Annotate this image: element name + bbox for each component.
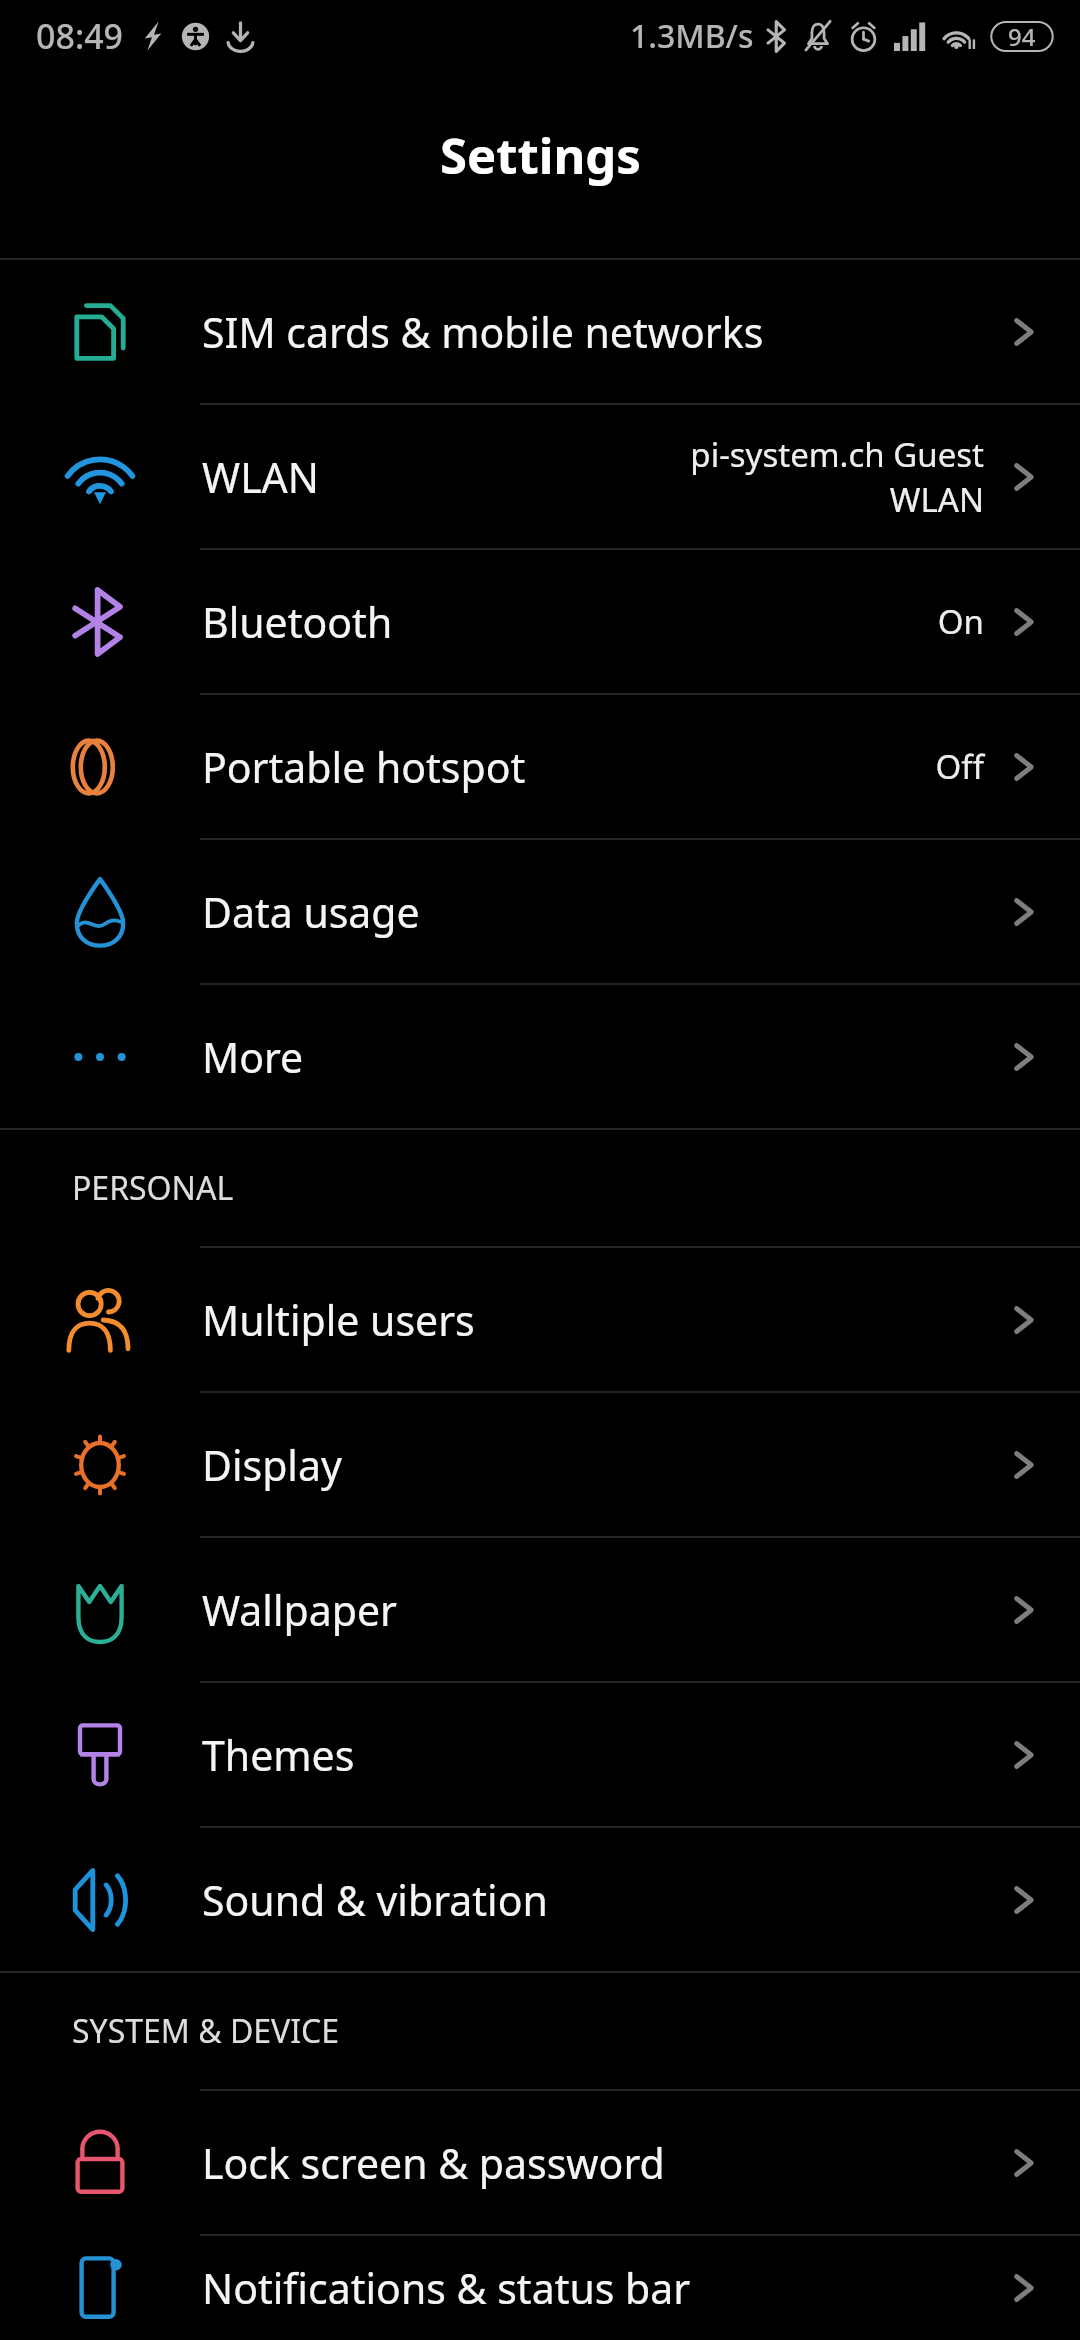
button[interactable]: Wallpaper [0,1538,1080,1681]
staticText: Wallpaper [202,1582,397,1638]
staticText: Data usage [202,884,420,940]
button[interactable]: More [0,985,1080,1128]
staticText: Off [935,744,984,789]
button[interactable]: Notifications & status bar [0,2236,1080,2340]
button[interactable]: Lock screen & password [0,2091,1080,2234]
staticText: Display [202,1437,342,1493]
staticText: Lock screen & password [202,2135,665,2191]
staticText: Multiple users [202,1292,475,1348]
staticText: Bluetooth [202,594,393,650]
staticText: PERSONAL [72,1166,234,1210]
staticText: 1.3MB/s [630,14,754,58]
staticText: Portable hotspot [202,739,526,795]
staticText: SYSTEM & DEVICE [72,2009,340,2053]
staticText: Notifications & status bar [202,2260,691,2316]
staticText: 08:49 [36,13,124,59]
staticText: On [937,599,984,644]
button[interactable]: Multiple users [0,1248,1080,1391]
button[interactable]: SIM cards & mobile networks [0,260,1080,403]
staticText: WLAN [202,449,319,505]
staticText: Themes [202,1727,355,1783]
staticText: pi-system.ch Guest WLAN [664,432,984,522]
button[interactable]: Data usage [0,840,1080,983]
button[interactable]: Sound & vibration [0,1828,1080,1971]
button[interactable]: Display [0,1393,1080,1536]
button[interactable]: Bluetooth [0,550,1080,693]
button[interactable]: WLAN [0,405,1080,548]
staticText: Sound & vibration [202,1872,548,1928]
staticText: SIM cards & mobile networks [202,304,764,360]
staticText: 94 [1008,20,1036,53]
staticText: Settings [440,122,641,189]
button[interactable]: Themes [0,1683,1080,1826]
button[interactable]: Portable hotspot [0,695,1080,838]
staticText: More [202,1029,304,1085]
